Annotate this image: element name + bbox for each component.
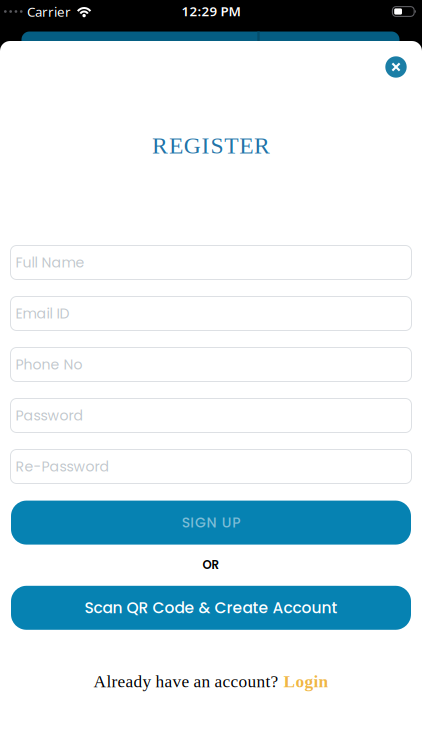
button[interactable]: Scan QR Code & Create Account [11, 586, 411, 630]
button[interactable]: Password [10, 398, 411, 432]
staticText: Login [283, 672, 328, 691]
button[interactable]: Login [283, 672, 328, 691]
staticText: I [190, 513, 194, 532]
staticText: I [202, 132, 210, 158]
button[interactable]: Re-Password [10, 449, 411, 483]
staticText: T [224, 132, 238, 158]
staticText: E [239, 132, 253, 158]
staticText: R [254, 132, 270, 158]
staticText: G [195, 513, 206, 532]
staticText: Scan QR Code & Create Account [84, 597, 337, 619]
staticText: P [232, 513, 240, 532]
staticText: Email ID [15, 304, 69, 323]
staticText: Carrier [27, 3, 71, 20]
staticText: R [152, 132, 168, 158]
staticText: U [222, 513, 232, 532]
button[interactable]: Full Name [10, 245, 411, 279]
staticText: OR [202, 557, 219, 573]
staticText: E [169, 132, 183, 158]
staticText: G [184, 132, 201, 158]
button[interactable]: Close [385, 56, 407, 78]
staticText: 12:29 PM [181, 2, 240, 20]
staticText: N [206, 513, 216, 532]
button[interactable]: Email ID [10, 296, 411, 330]
staticText: Already have an account? [93, 672, 278, 691]
staticText: Full Name [15, 253, 84, 272]
staticText: S [210, 132, 223, 158]
staticText: Phone No [15, 355, 82, 374]
button[interactable]: S [11, 501, 411, 545]
button[interactable]: Phone No [10, 347, 411, 381]
staticText: Password [15, 406, 83, 425]
staticText: S [182, 513, 190, 532]
staticText: Re-Password [15, 457, 109, 476]
